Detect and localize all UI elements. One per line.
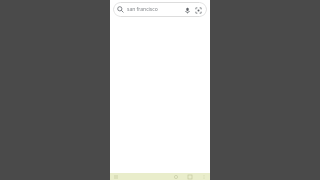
button[interactable]: Menu [113, 174, 119, 180]
button[interactable]: Voice search [182, 5, 192, 15]
button[interactable]: Google Lens [193, 5, 203, 15]
staticText: san francisco [127, 6, 180, 13]
button[interactable]: More options [201, 174, 207, 180]
button[interactable]: Home [173, 174, 179, 180]
button[interactable]: san francisco [113, 2, 207, 17]
button[interactable]: Tabs [187, 174, 193, 180]
